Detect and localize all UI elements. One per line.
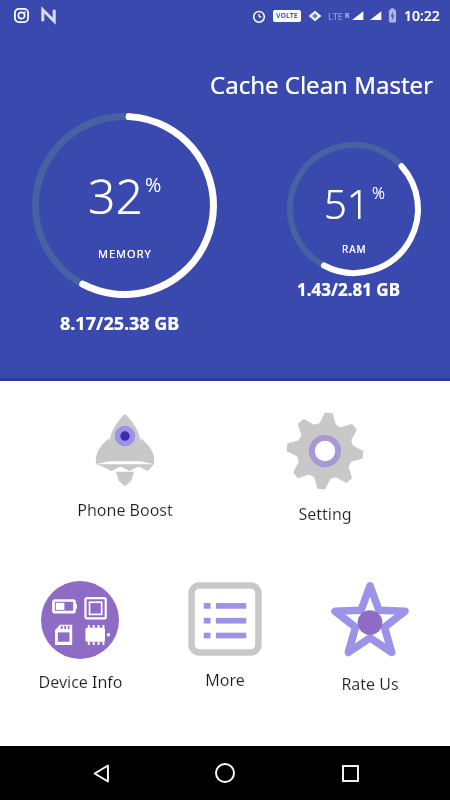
other: More xyxy=(187,581,263,657)
staticText: MEMORY xyxy=(98,246,152,261)
other: Device Info xyxy=(41,581,119,659)
button[interactable]: Device Info xyxy=(15,577,145,697)
staticText: Device Info xyxy=(38,671,123,693)
staticText: % xyxy=(372,182,385,204)
other: Setting xyxy=(285,411,365,491)
button[interactable]: Back xyxy=(77,749,125,797)
staticText: 51 xyxy=(324,176,370,230)
button[interactable]: Recent apps xyxy=(326,749,374,797)
staticText: Phone Boost xyxy=(77,499,173,521)
staticText: More xyxy=(205,669,245,691)
button[interactable]: More xyxy=(160,577,290,695)
staticText: VOLTE xyxy=(276,11,298,21)
staticText: % xyxy=(145,171,162,198)
staticText: Rate Us xyxy=(341,673,399,695)
staticText: 10:22 xyxy=(404,6,440,25)
staticText: RAM xyxy=(342,242,367,256)
button[interactable]: Home xyxy=(201,749,249,797)
other: Rate Us xyxy=(330,581,410,661)
button[interactable]: Phone Boost xyxy=(50,407,200,525)
staticText: 32 xyxy=(88,163,143,228)
staticText: LTE xyxy=(328,10,343,22)
staticText: 8.17/25.38 GB xyxy=(60,311,180,336)
button[interactable]: Setting xyxy=(250,407,400,529)
staticText: Cache Clean Master xyxy=(210,68,434,101)
button[interactable]: Rate Us xyxy=(305,577,435,699)
staticText: Setting xyxy=(298,503,352,525)
staticText: R xyxy=(345,11,350,21)
other: Phone Boost xyxy=(87,411,163,487)
staticText: 1.43/2.81 GB xyxy=(297,278,400,301)
